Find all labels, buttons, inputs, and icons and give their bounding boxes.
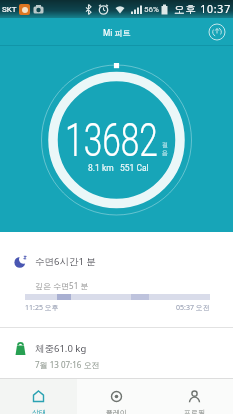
button[interactable]: 13682 bbox=[0, 46, 233, 232]
staticText: 56% bbox=[144, 5, 159, 14]
staticText: Mi 피트 bbox=[103, 27, 131, 38]
button[interactable]: 프로필 bbox=[155, 379, 233, 414]
button[interactable]: 수면6시간1 분 bbox=[0, 232, 233, 327]
staticText: 수면6시간1 분 bbox=[35, 255, 96, 268]
button[interactable]: 체중61.0 kg bbox=[0, 328, 233, 378]
staticText: 플레이 bbox=[106, 408, 127, 414]
staticText: SKT bbox=[2, 5, 17, 14]
staticText: 13682 bbox=[65, 113, 158, 167]
staticText: 상태 bbox=[32, 408, 46, 414]
staticText: 음 bbox=[162, 149, 168, 157]
staticText: 깊은 수면51 분 bbox=[35, 280, 89, 291]
staticText: 8.1 km 551 Cal bbox=[88, 163, 149, 173]
button[interactable] bbox=[207, 22, 227, 42]
staticText: 걸 bbox=[162, 141, 168, 149]
staticText: 프로필 bbox=[184, 408, 205, 414]
staticText: 오후 10:37 bbox=[174, 2, 231, 16]
button[interactable]: 플레이 bbox=[77, 379, 155, 414]
staticText: 체중61.0 kg bbox=[35, 342, 87, 355]
staticText: 7월 13 07:16 오전 bbox=[35, 359, 100, 370]
staticText: 11:25 오후 bbox=[25, 303, 59, 313]
button[interactable]: 상태 bbox=[0, 379, 77, 414]
staticText: 05:37 오전 bbox=[176, 303, 210, 313]
